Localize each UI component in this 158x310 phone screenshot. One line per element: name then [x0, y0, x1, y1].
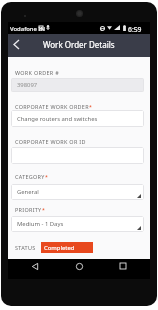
- button[interactable]: General: [11, 184, 144, 200]
- staticText: 6:59: [128, 25, 142, 34]
- staticText: Work Order Details: [43, 39, 115, 50]
- button[interactable]: Change routers and switches: [11, 110, 144, 127]
- staticText: Medium - 1 Days: [17, 220, 64, 228]
- button[interactable]: [11, 147, 144, 164]
- staticText: STATUS: [15, 244, 36, 251]
- staticText: CORPORATE WORK OR ID: [15, 138, 86, 145]
- staticText: CORPORATE WORK ORDER: [15, 103, 89, 110]
- staticText: *: [89, 103, 92, 110]
- button[interactable]: Recent apps: [116, 259, 130, 273]
- staticText: WORK ORDER #: [15, 69, 59, 76]
- staticText: *: [45, 173, 48, 180]
- button[interactable]: Medium - 1 Days: [11, 216, 144, 232]
- staticText: 398097: [17, 81, 38, 89]
- button[interactable]: Back: [28, 259, 42, 273]
- button[interactable]: Completed: [41, 242, 93, 253]
- staticText: PRIORITY: [15, 206, 42, 213]
- staticText: Completed: [44, 244, 75, 252]
- button[interactable]: Back: [8, 34, 27, 57]
- button[interactable]: Home: [72, 259, 86, 273]
- button[interactable]: 398097: [11, 78, 144, 92]
- staticText: CATEGORY: [15, 173, 45, 180]
- staticText: Change routers and switches: [17, 115, 98, 123]
- staticText: *: [42, 206, 45, 213]
- staticText: General: [17, 188, 39, 196]
- staticText: Vodafone IN: [10, 25, 46, 33]
